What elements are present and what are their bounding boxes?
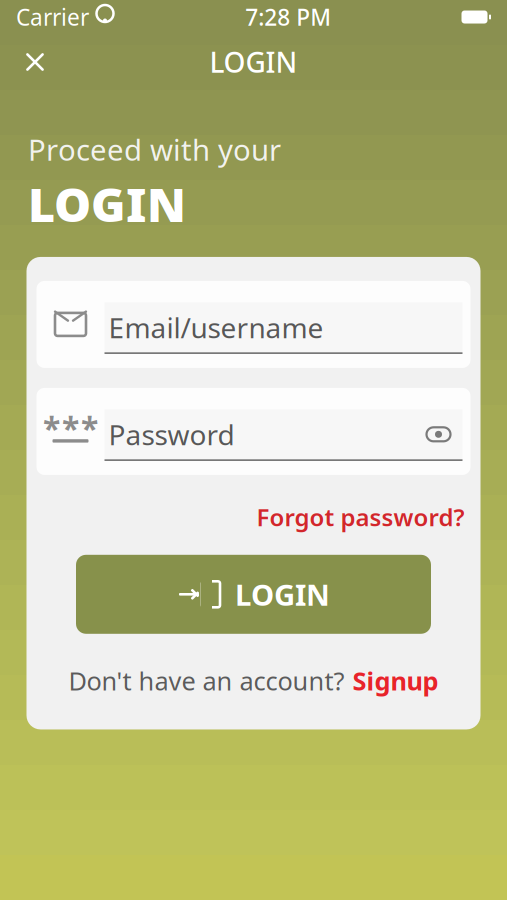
staticText: * (43, 407, 60, 449)
button[interactable]: Forgot password? (256, 495, 464, 539)
staticText: LOGIN (209, 43, 297, 81)
button[interactable]: Close (12, 39, 58, 85)
staticText: Carrier (16, 2, 89, 32)
staticText: LOGIN (235, 575, 330, 614)
button[interactable]: Don't have an account? (68, 656, 438, 705)
staticText: Email/username (108, 309, 323, 346)
button[interactable]: Show password (418, 414, 458, 454)
staticText: Proceed with your (28, 130, 281, 169)
button[interactable]: LOGIN (76, 555, 431, 634)
staticText: Don't have an account? (68, 664, 344, 697)
staticText: 7:28 PM (245, 2, 331, 32)
staticText: * (62, 407, 79, 449)
staticText: Signup (352, 664, 438, 697)
staticText: * (81, 407, 98, 449)
staticText: LOGIN (28, 173, 186, 235)
staticText: Forgot password? (256, 501, 464, 533)
staticText: Password (108, 416, 234, 453)
